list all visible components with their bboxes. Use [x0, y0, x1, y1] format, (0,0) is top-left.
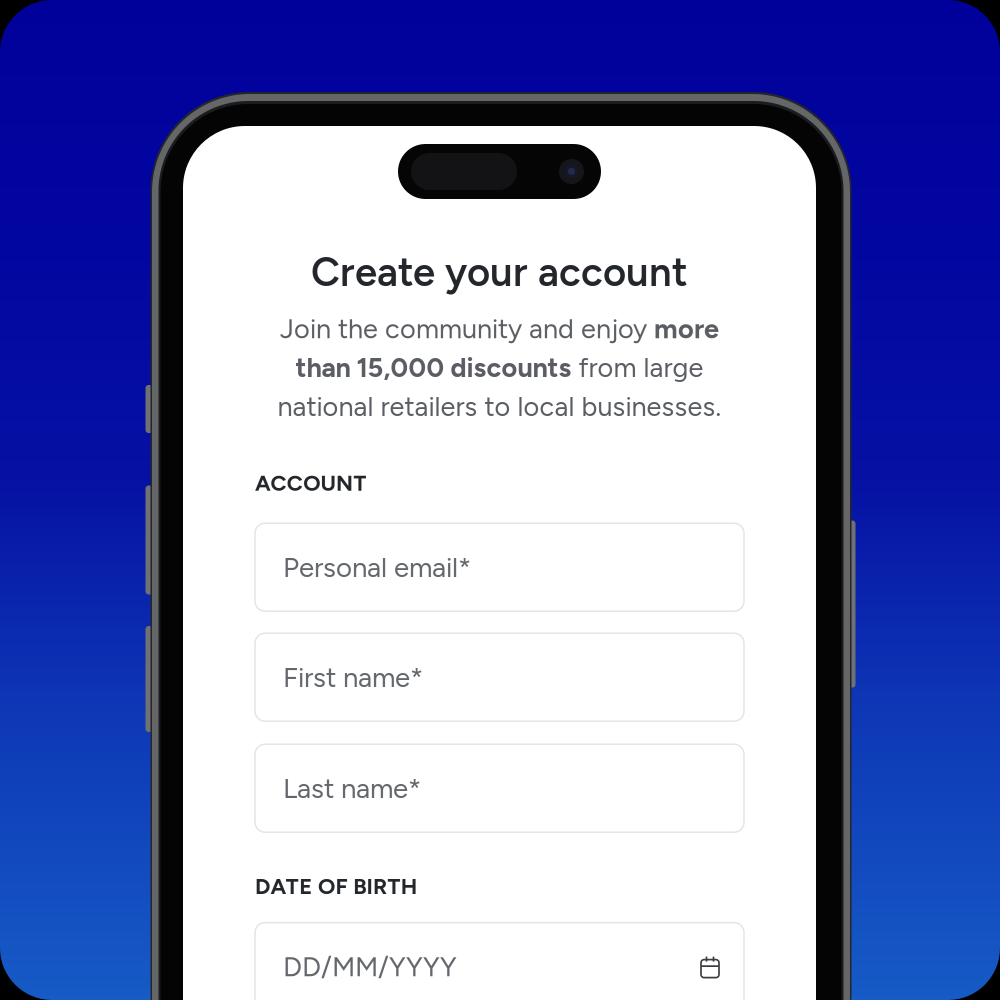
staticText: Join the community and enjoy more: [280, 313, 719, 345]
staticText: DATE OF BIRTH: [255, 873, 418, 900]
staticText: national retailers to local businesses.: [277, 390, 721, 423]
staticText: DD/MM/YYYY: [283, 950, 457, 983]
staticText: First name*: [283, 661, 423, 694]
staticText: than 15,000 discounts from large: [295, 352, 703, 383]
button[interactable]: Last name*: [255, 744, 744, 832]
staticText: ACCOUNT: [255, 470, 366, 496]
button[interactable]: First name*: [255, 633, 744, 721]
staticText: Last name*: [283, 772, 421, 805]
staticText: Personal email*: [283, 551, 471, 584]
button[interactable]: Personal email*: [255, 523, 744, 611]
staticText: Create your account: [311, 248, 688, 296]
button[interactable]: DD/MM/YYYY: [255, 923, 744, 1000]
